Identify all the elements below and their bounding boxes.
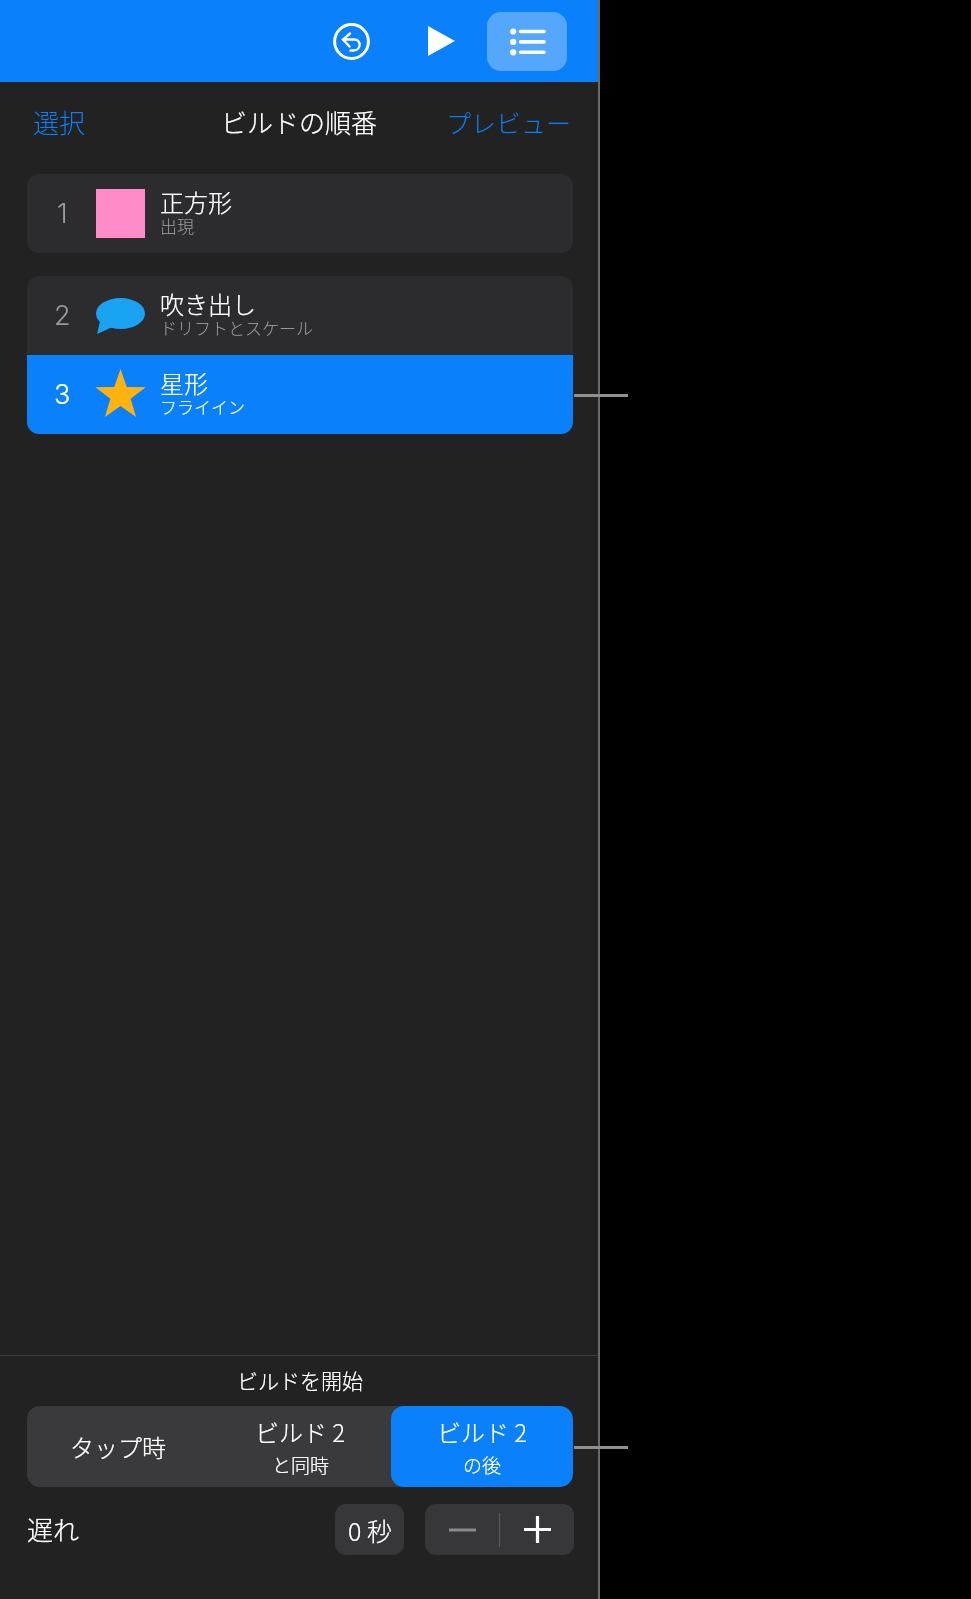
- staticText: 2: [54, 299, 71, 332]
- button[interactable]: Undo: [322, 12, 380, 70]
- staticText: ドリフトとスケール: [160, 315, 313, 340]
- staticText: 0 秒: [348, 1512, 392, 1548]
- button[interactable]: 選択: [20, 93, 99, 151]
- button[interactable]: 1: [27, 174, 573, 253]
- button[interactable]: タップ時: [27, 1406, 209, 1487]
- button[interactable]: 2: [27, 276, 573, 355]
- staticText: プレビュー: [446, 104, 572, 140]
- staticText: 1: [57, 197, 68, 230]
- staticText: ビルド 2: [437, 1414, 528, 1449]
- button[interactable]: Decrease delay: [425, 1504, 499, 1555]
- staticText: 選択: [33, 103, 86, 141]
- button[interactable]: 3: [27, 355, 573, 434]
- staticText: タップ時: [70, 1429, 166, 1464]
- staticText: と同時: [272, 1451, 330, 1479]
- staticText: 遅れ: [27, 1510, 80, 1548]
- button[interactable]: プレビュー: [433, 94, 585, 150]
- button[interactable]: Play: [412, 12, 470, 70]
- staticText: ビルドの順番: [221, 103, 378, 141]
- staticText: フライイン: [160, 394, 245, 419]
- staticText: 吹き出し: [160, 286, 256, 321]
- staticText: ビルド 2: [255, 1414, 346, 1449]
- button[interactable]: ビルド 2: [209, 1406, 391, 1487]
- staticText: ビルドを開始: [237, 1365, 363, 1395]
- button[interactable]: 0 秒: [335, 1504, 404, 1555]
- staticText: 正方形: [160, 184, 232, 219]
- button[interactable]: ビルド 2: [391, 1406, 573, 1487]
- staticText: の後: [463, 1451, 502, 1479]
- staticText: 出現: [160, 213, 194, 238]
- button[interactable]: Increase delay: [500, 1504, 574, 1555]
- button[interactable]: Build order: [487, 12, 567, 71]
- staticText: 3: [54, 378, 71, 411]
- staticText: 星形: [160, 365, 208, 400]
